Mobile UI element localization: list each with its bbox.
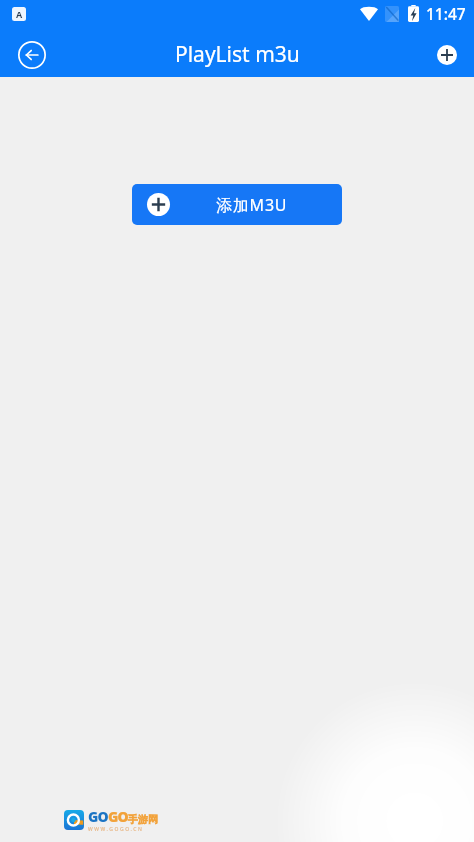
staticText: 添加M3U [216, 194, 288, 216]
button[interactable]: Add playlist [432, 40, 462, 70]
staticText: WWW.GOGO.CN [88, 826, 144, 833]
staticText: PlayList m3u [175, 40, 300, 69]
button[interactable]: Back [13, 36, 51, 74]
button[interactable]: 添加M3U [132, 184, 342, 225]
staticText: 11:47 [426, 3, 466, 24]
staticText: A [16, 8, 23, 20]
staticText: GO [88, 807, 108, 826]
staticText: 手游网 [128, 813, 158, 826]
staticText: GO [108, 807, 128, 826]
